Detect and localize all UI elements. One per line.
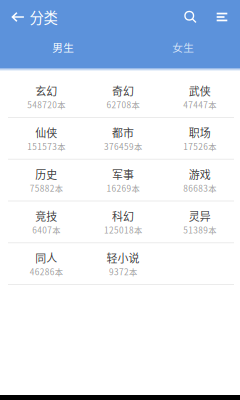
button[interactable]: Menu — [210, 6, 233, 28]
staticText: 86683本 — [183, 182, 216, 194]
staticText: 灵异 — [189, 208, 211, 224]
staticText: 科幻 — [112, 208, 134, 224]
button[interactable]: 玄幻 — [8, 76, 85, 117]
staticText: 仙侠 — [35, 124, 57, 140]
button[interactable]: 科幻 — [85, 201, 161, 242]
button[interactable]: 竞技 — [8, 201, 85, 242]
staticText: 9372本 — [109, 266, 137, 278]
staticText: 51389本 — [183, 224, 216, 236]
staticText: 46286本 — [30, 266, 63, 278]
staticText: 职场 — [189, 124, 211, 140]
staticText: 548720本 — [27, 99, 65, 111]
button[interactable]: 历史 — [8, 160, 85, 201]
button[interactable]: 男生 — [0, 40, 126, 54]
button[interactable]: 奇幻 — [85, 76, 161, 117]
button[interactable]: 都市 — [85, 118, 161, 159]
staticText: 竞技 — [35, 208, 57, 224]
staticText: 奇幻 — [112, 83, 134, 98]
button[interactable]: Back — [6, 6, 29, 28]
staticText: 62708本 — [106, 99, 139, 111]
staticText: 轻小说 — [106, 250, 139, 265]
staticText: 武侠 — [189, 83, 211, 98]
staticText: 125018本 — [104, 224, 142, 236]
staticText: 玄幻 — [35, 83, 57, 98]
staticText: 376459本 — [104, 140, 142, 152]
staticText: 分类 — [29, 7, 57, 27]
staticText: 女生 — [172, 39, 194, 55]
staticText: 75882本 — [30, 182, 63, 194]
button[interactable]: 游戏 — [161, 160, 238, 201]
button[interactable]: 女生 — [126, 40, 240, 54]
button[interactable]: 灵异 — [161, 201, 238, 242]
button[interactable]: Search — [170, 6, 210, 28]
staticText: 都市 — [112, 124, 134, 140]
staticText: 历史 — [35, 166, 57, 182]
button[interactable]: 职场 — [161, 118, 238, 159]
staticText: 16269本 — [106, 182, 139, 194]
staticText: 6407本 — [32, 224, 60, 236]
button[interactable]: 军事 — [85, 160, 161, 201]
staticText: 17526本 — [183, 140, 216, 152]
staticText: 同人 — [35, 250, 57, 265]
button[interactable]: 同人 — [8, 243, 85, 284]
staticText: 军事 — [112, 166, 134, 182]
button[interactable]: 分类 — [29, 6, 57, 28]
staticText: 游戏 — [189, 166, 211, 182]
staticText: 47447本 — [183, 99, 216, 111]
button[interactable]: 仙侠 — [8, 118, 85, 159]
button[interactable]: 轻小说 — [85, 243, 161, 284]
button[interactable]: 武侠 — [161, 76, 238, 117]
staticText: 男生 — [52, 39, 74, 55]
staticText: 151573本 — [27, 140, 65, 152]
